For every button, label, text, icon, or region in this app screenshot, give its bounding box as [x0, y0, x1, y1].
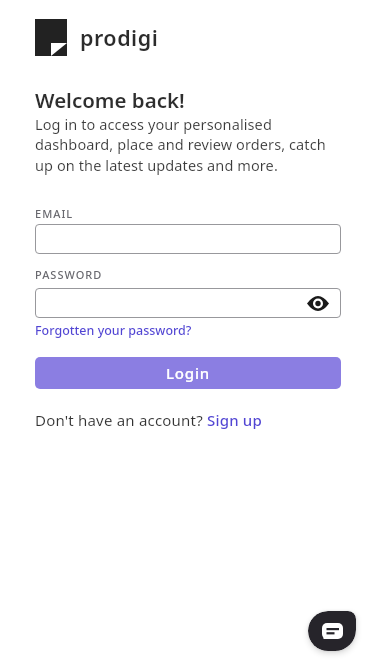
button[interactable]: Forgotten your password?	[35, 322, 192, 339]
button[interactable]	[35, 224, 341, 254]
staticText: PASSWORD	[35, 267, 103, 282]
button[interactable]: Don't have an account? Sign up	[35, 410, 262, 430]
staticText: prodigi	[80, 23, 159, 52]
button[interactable]	[308, 611, 356, 651]
staticText: Log in to access your personalised dashb…	[35, 114, 326, 176]
staticText: EMAIL	[35, 206, 74, 221]
button[interactable]: Login	[35, 357, 341, 389]
staticText: Welcome back!	[35, 86, 185, 114]
button[interactable]	[307, 296, 329, 311]
staticText: Login	[166, 363, 210, 383]
button[interactable]	[35, 288, 341, 318]
